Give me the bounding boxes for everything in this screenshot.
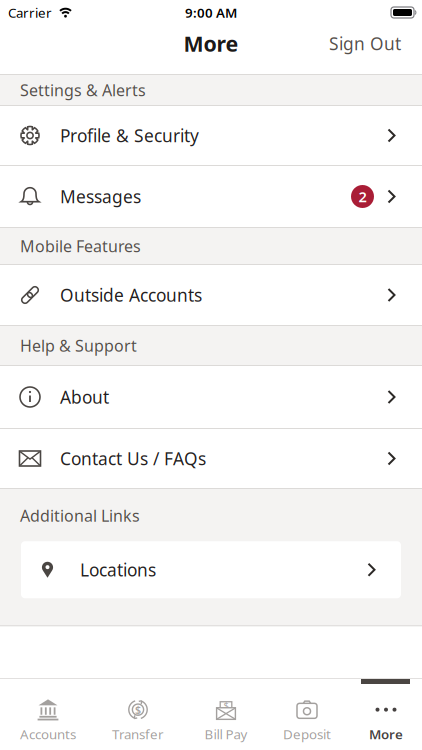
button[interactable]: Accounts [13,698,83,743]
staticText: Outside Accounts [60,283,202,306]
staticText: Settings & Alerts [20,79,146,101]
staticText: Messages [60,185,141,208]
staticText: More [183,29,238,58]
staticText: Additional Links [20,505,140,526]
button[interactable]: More [351,698,421,743]
button[interactable]: About [0,366,422,429]
staticText: Locations [80,558,156,581]
staticText: Sign Out [329,32,401,55]
button[interactable]: Contact Us / FAQs [0,429,422,488]
button[interactable]: Deposit [272,698,342,743]
staticText: Bill Pay [204,725,247,743]
staticText: $ [223,699,228,711]
button[interactable]: $ [103,698,173,743]
button[interactable]: Messages [0,166,422,227]
staticText: 9:00 AM [185,4,237,21]
staticText: Transfer [112,725,164,743]
staticText: Contact Us / FAQs [60,447,206,470]
button[interactable]: Sign Out [329,32,401,55]
staticText: Deposit [283,725,331,743]
staticText: Mobile Features [20,235,141,257]
button[interactable]: $ [191,698,261,743]
staticText: Profile & Security [60,124,199,147]
button[interactable]: Profile & Security [0,106,422,166]
staticText: 2 [358,187,366,206]
button[interactable]: Locations [21,541,401,598]
staticText: $ [135,703,141,717]
staticText: Help & Support [20,335,137,356]
staticText: Accounts [20,725,76,743]
staticText: Carrier [8,4,52,21]
button[interactable]: Outside Accounts [0,265,422,325]
staticText: About [60,385,109,408]
staticText: More [369,725,403,743]
